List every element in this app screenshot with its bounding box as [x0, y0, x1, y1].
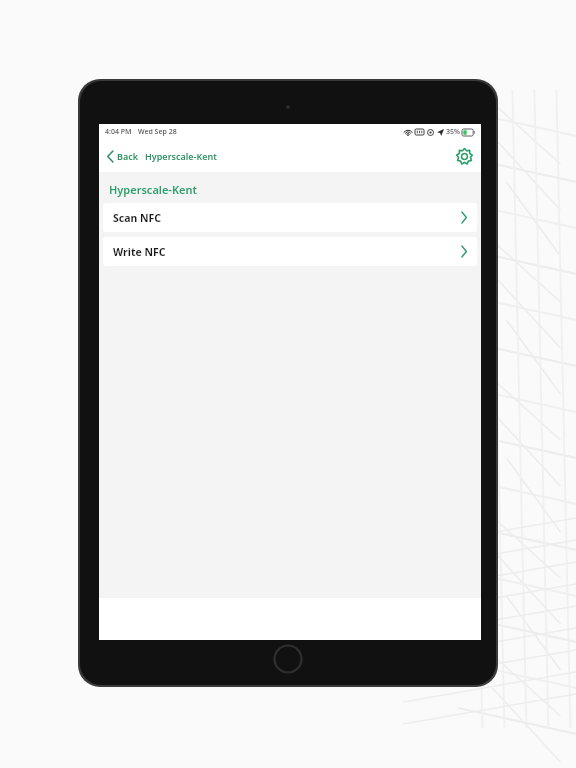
staticText: 4:04 PM: [105, 127, 132, 137]
button[interactable]: Scan NFC: [103, 203, 477, 232]
staticText: Back: [117, 150, 139, 162]
staticText: Write NFC: [113, 245, 166, 259]
staticText: Hyperscale-Kent: [109, 182, 197, 197]
button[interactable]: Write NFC: [103, 237, 477, 266]
staticText: Scan NFC: [113, 211, 162, 225]
button[interactable]: Settings: [453, 145, 475, 167]
staticText: Hyperscale-Kent: [145, 150, 217, 162]
staticText: Wed Sep 28: [138, 127, 177, 137]
staticText: 35%: [446, 127, 460, 137]
button[interactable]: Back: [104, 146, 142, 166]
